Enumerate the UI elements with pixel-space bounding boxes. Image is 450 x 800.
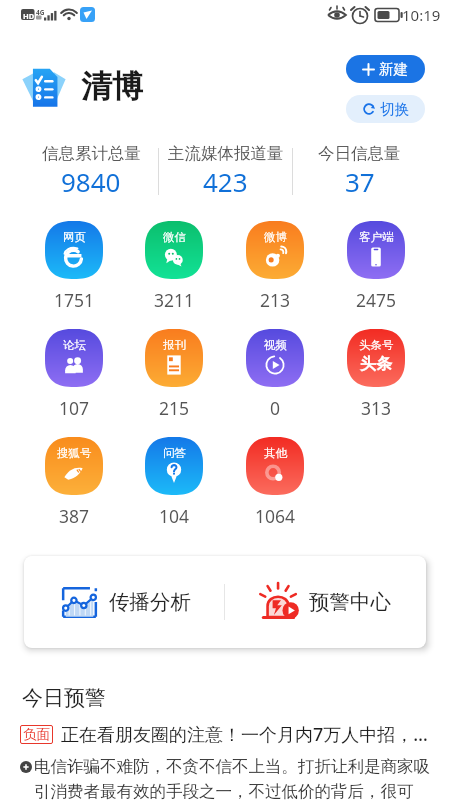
button[interactable]: 切换 bbox=[346, 95, 425, 123]
staticText: 视频 bbox=[264, 338, 287, 352]
staticText: 215 bbox=[159, 396, 190, 420]
staticText: 信息累计总量 bbox=[42, 143, 141, 164]
staticText: 37 bbox=[345, 164, 375, 199]
staticText: 2475 bbox=[356, 288, 397, 312]
staticText: 10:19 bbox=[402, 5, 441, 25]
button[interactable]: 客户端 bbox=[347, 221, 405, 312]
staticText: 新建 bbox=[379, 60, 408, 78]
staticText: 论坛 bbox=[63, 338, 86, 352]
staticText: 微信 bbox=[163, 230, 186, 244]
staticText: 213 bbox=[260, 288, 291, 312]
button[interactable]: 微信 bbox=[145, 221, 203, 312]
staticText: 头条号 bbox=[359, 338, 394, 352]
button[interactable]: 报刊 bbox=[145, 329, 203, 420]
button[interactable]: 网页 bbox=[45, 221, 103, 312]
staticText: 4G bbox=[36, 8, 45, 17]
staticText: 1064 bbox=[255, 504, 296, 528]
button[interactable]: 搜狐号 bbox=[45, 437, 103, 528]
staticText: 报刊 bbox=[163, 338, 186, 352]
button[interactable]: 今日信息量 bbox=[293, 143, 426, 199]
staticText: 清博 bbox=[81, 67, 143, 106]
button[interactable]: 预警中心 bbox=[225, 556, 426, 648]
staticText: 电信诈骗不难防，不贪不信不上当。打折让利是商家吸引消费者最有效的手段之一，不过低… bbox=[34, 756, 442, 800]
staticText: 104 bbox=[159, 504, 190, 528]
staticText: 传播分析 bbox=[109, 589, 191, 615]
button[interactable]: 头条号 bbox=[347, 329, 405, 420]
button[interactable]: 论坛 bbox=[45, 329, 103, 420]
staticText: 107 bbox=[59, 396, 90, 420]
staticText: 423 bbox=[203, 164, 248, 199]
staticText: 问答 bbox=[163, 446, 186, 460]
staticText: 切换 bbox=[380, 100, 409, 118]
staticText: 预警中心 bbox=[309, 589, 391, 615]
button[interactable]: 信息累计总量 bbox=[24, 143, 158, 199]
staticText: 头条 bbox=[360, 354, 392, 374]
button[interactable]: 微博 bbox=[246, 221, 304, 312]
button[interactable]: 新建 bbox=[346, 55, 425, 83]
staticText: 负面 bbox=[23, 726, 50, 743]
staticText: 0 bbox=[270, 396, 281, 420]
staticText: 313 bbox=[361, 396, 392, 420]
button[interactable]: 视频 bbox=[246, 329, 304, 420]
staticText: 其他 bbox=[264, 446, 287, 460]
staticText: 387 bbox=[59, 504, 90, 528]
staticText: 微博 bbox=[264, 230, 287, 244]
staticText: 主流媒体报道量 bbox=[168, 143, 284, 164]
staticText: 网页 bbox=[63, 230, 86, 244]
staticText: 9840 bbox=[61, 164, 121, 199]
staticText: 今日信息量 bbox=[318, 143, 401, 164]
button[interactable]: 传播分析 bbox=[24, 556, 224, 648]
staticText: HD bbox=[23, 11, 35, 21]
button[interactable]: 其他 bbox=[246, 437, 304, 528]
button[interactable]: 负面 bbox=[20, 722, 428, 747]
staticText: 3211 bbox=[154, 288, 195, 312]
button[interactable]: 主流媒体报道量 bbox=[159, 143, 292, 199]
staticText: 正在看朋友圈的注意！一个月内7万人中招，… bbox=[61, 722, 428, 747]
staticText: 今日预警 bbox=[22, 685, 106, 711]
staticText: 搜狐号 bbox=[57, 446, 92, 460]
staticText: 客户端 bbox=[359, 230, 394, 244]
button[interactable]: 问答 bbox=[145, 437, 203, 528]
staticText: 1751 bbox=[54, 288, 95, 312]
